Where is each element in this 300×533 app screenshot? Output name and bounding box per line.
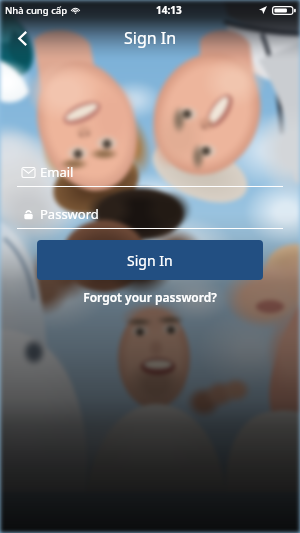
staticText: Sign In (127, 251, 173, 270)
button[interactable]: Sign In (37, 240, 263, 280)
staticText: Sign In (124, 27, 177, 49)
button[interactable]: Forgot your password? (0, 289, 300, 305)
staticText: Nhà cung cấp (5, 4, 68, 17)
button[interactable]: Back (0, 22, 46, 54)
staticText: Email (40, 163, 74, 181)
staticText: Password (40, 205, 99, 223)
staticText: 14:13 (156, 3, 182, 17)
